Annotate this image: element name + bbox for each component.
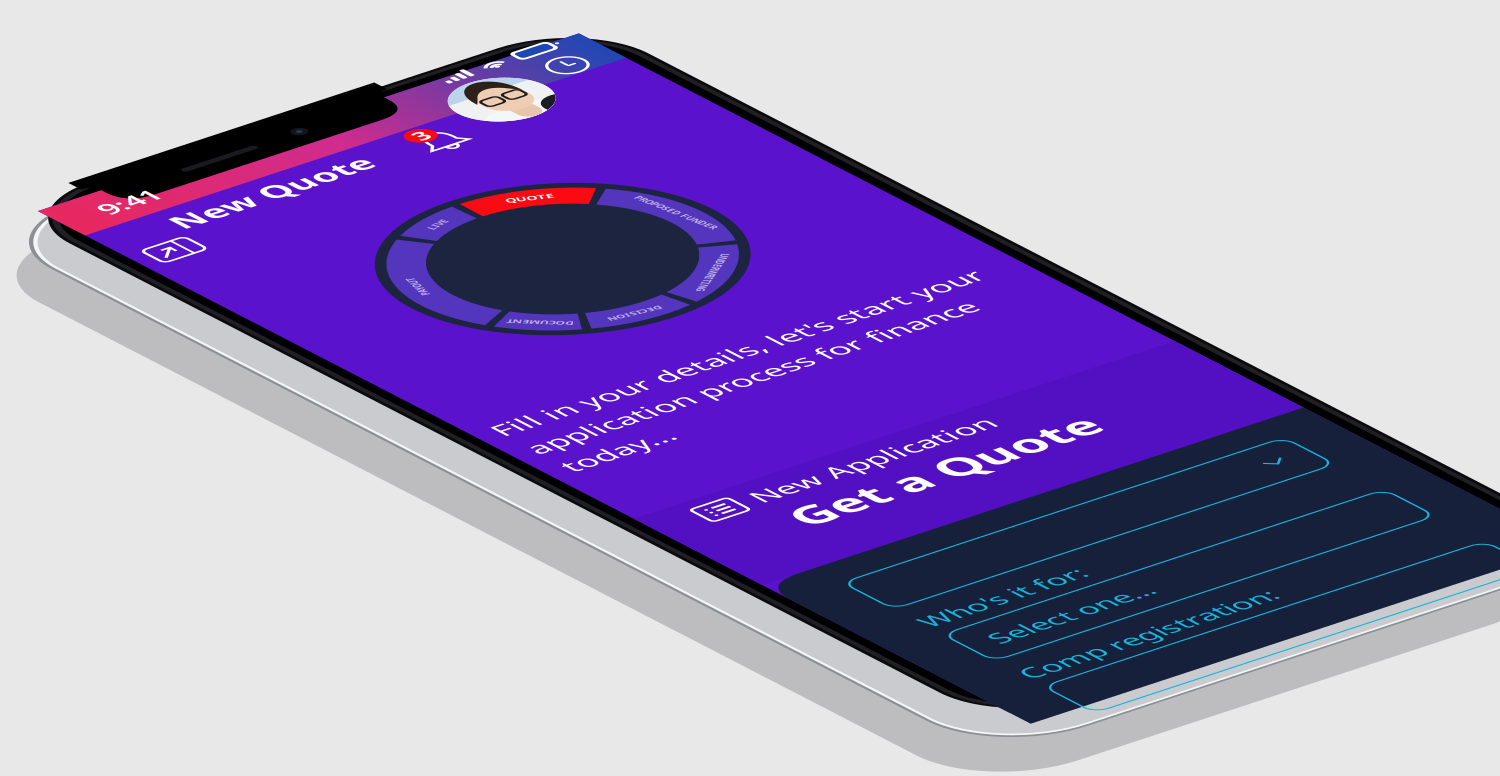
staticText: DECISION <box>153 325 186 333</box>
staticText: LIVE <box>151 155 166 164</box>
staticText: UNDERWRITING <box>209 308 262 317</box>
staticText: Fill in your details, let's start your <box>12 395 348 424</box>
staticText: QUOTE <box>205 158 232 169</box>
staticText: DOCUMENT <box>102 300 140 309</box>
staticText: application process for finance <box>12 428 320 456</box>
